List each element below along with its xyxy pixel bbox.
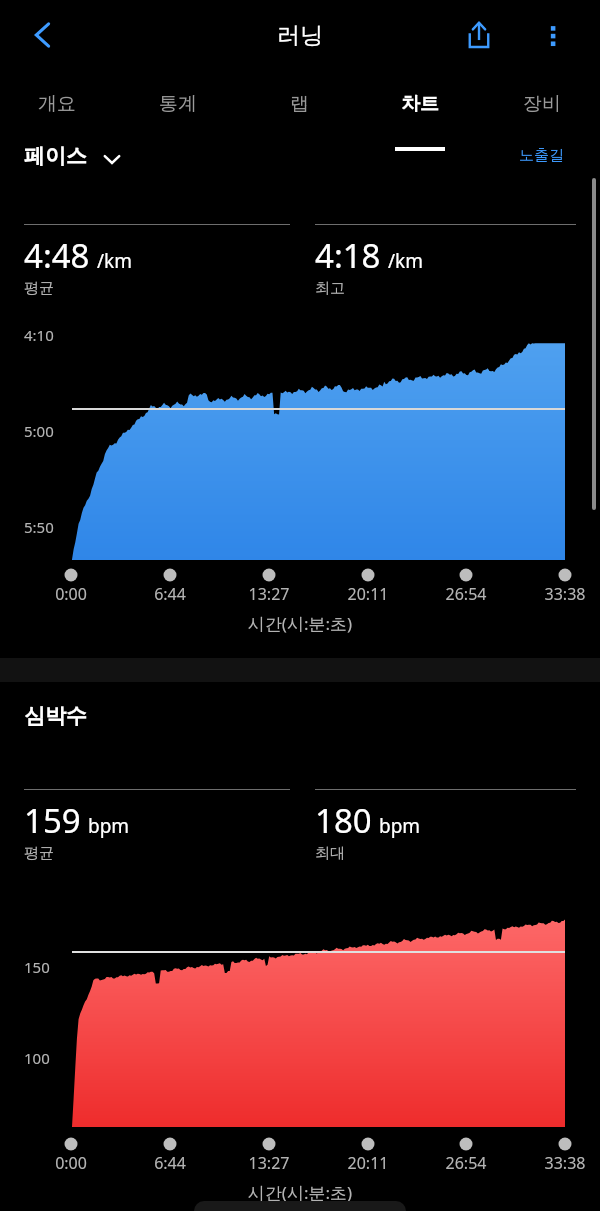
staticText: 차트	[401, 92, 439, 116]
staticText: 최고	[315, 279, 345, 298]
staticText: 0:00	[39, 1152, 103, 1174]
button[interactable]: Back	[14, 6, 72, 64]
staticText: 33:38	[533, 583, 597, 605]
staticText: 26:54	[434, 1152, 498, 1174]
staticText: 33:38	[533, 1152, 597, 1174]
button[interactable]: 장비	[486, 78, 598, 130]
staticText: 통계	[159, 92, 197, 116]
button[interactable]: 개요	[1, 78, 113, 130]
staticText: 5:00	[24, 421, 54, 441]
staticText: 심박수	[24, 703, 87, 729]
staticText: 랩	[290, 92, 309, 116]
staticText: 5:50	[24, 517, 54, 537]
staticText: 4:10	[24, 325, 54, 345]
button[interactable]: 노출길	[519, 146, 564, 165]
button[interactable]: 통계	[122, 78, 234, 130]
staticText: 0:00	[39, 583, 103, 605]
staticText: 페이스	[24, 143, 87, 169]
staticText: 4:48	[24, 233, 90, 278]
staticText: bpm	[88, 813, 130, 839]
staticText: 장비	[523, 92, 561, 116]
staticText: 최대	[315, 844, 345, 863]
staticText: 20:11	[336, 583, 400, 605]
staticText: 시간(시:분:초)	[0, 612, 600, 635]
staticText: 100	[24, 1048, 50, 1068]
staticText: 13:27	[237, 1152, 301, 1174]
staticText: 시간(시:분:초)	[0, 1181, 600, 1204]
staticText: /km	[97, 248, 132, 274]
staticText: 6:44	[138, 583, 202, 605]
button[interactable]: More options	[524, 6, 582, 64]
staticText: 20:11	[336, 1152, 400, 1174]
staticText: 180	[315, 798, 372, 843]
staticText: /km	[388, 248, 423, 274]
staticText: 개요	[38, 92, 76, 116]
staticText: 4:18	[315, 233, 381, 278]
button[interactable]: 차트	[364, 78, 476, 130]
staticText: bpm	[379, 813, 421, 839]
button[interactable]: 랩	[243, 78, 355, 130]
button[interactable]: 페이스	[24, 140, 121, 172]
staticText: 평균	[24, 279, 54, 298]
staticText: 6:44	[138, 1152, 202, 1174]
staticText: 26:54	[434, 583, 498, 605]
staticText: 평균	[24, 844, 54, 863]
staticText: 13:27	[237, 583, 301, 605]
staticText: 150	[24, 957, 50, 977]
staticText: 159	[24, 798, 81, 843]
staticText: 러닝	[0, 21, 600, 50]
button[interactable]: Share	[450, 6, 508, 64]
